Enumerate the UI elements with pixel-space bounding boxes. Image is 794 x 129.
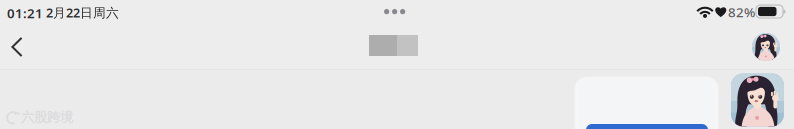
staticText: 01:21 xyxy=(7,4,43,22)
staticText: 82% xyxy=(728,3,755,21)
button[interactable]: Primary action xyxy=(586,124,708,129)
staticText: 六股跨境 xyxy=(21,109,73,126)
button[interactable]: Open image xyxy=(731,75,784,125)
staticText: 2月22日周六 xyxy=(46,4,119,21)
button[interactable]: Back xyxy=(3,32,31,62)
button[interactable]: Profile xyxy=(752,33,780,61)
